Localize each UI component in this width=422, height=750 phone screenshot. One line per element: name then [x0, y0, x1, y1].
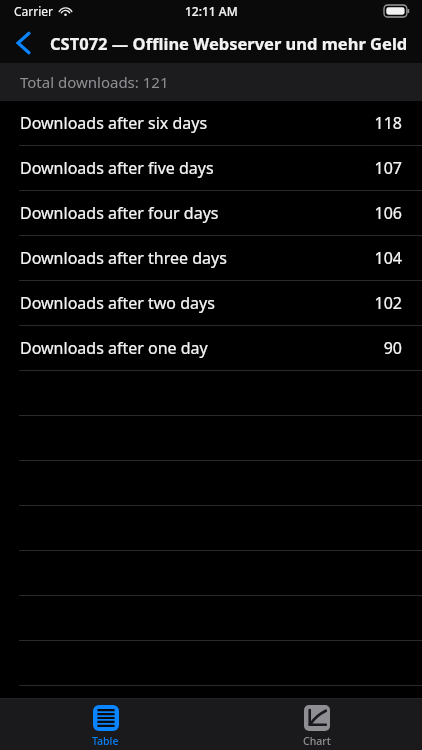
staticText: 90: [383, 337, 402, 359]
button[interactable]: Table: [0, 699, 211, 750]
staticText: 12:11 AM: [185, 3, 238, 19]
staticText: Downloads after six days: [20, 112, 374, 134]
staticText: Downloads after five days: [20, 157, 374, 179]
button[interactable]: Downloads after one day: [0, 326, 422, 370]
button[interactable]: Downloads after five days: [0, 146, 422, 190]
staticText: 107: [374, 157, 402, 179]
button[interactable]: Downloads after four days: [0, 191, 422, 235]
staticText: CST072 — Offline Webserver und mehr Geld: [50, 32, 408, 54]
staticText: Table: [92, 734, 119, 748]
staticText: 104: [374, 247, 402, 269]
staticText: Chart: [303, 734, 331, 748]
button[interactable]: Downloads after six days: [0, 101, 422, 145]
staticText: Downloads after four days: [20, 202, 374, 224]
staticText: Total downloads: 121: [20, 72, 169, 92]
staticText: Carrier: [14, 3, 54, 19]
staticText: 102: [374, 292, 402, 314]
button[interactable]: Chart: [211, 699, 422, 750]
staticText: Downloads after one day: [20, 337, 383, 359]
button[interactable]: Downloads after three days: [0, 236, 422, 280]
staticText: 106: [374, 202, 402, 224]
staticText: Downloads after two days: [20, 292, 374, 314]
staticText: 118: [374, 112, 402, 134]
button[interactable]: Back: [0, 22, 46, 63]
staticText: Downloads after three days: [20, 247, 374, 269]
button[interactable]: Downloads after two days: [0, 281, 422, 325]
